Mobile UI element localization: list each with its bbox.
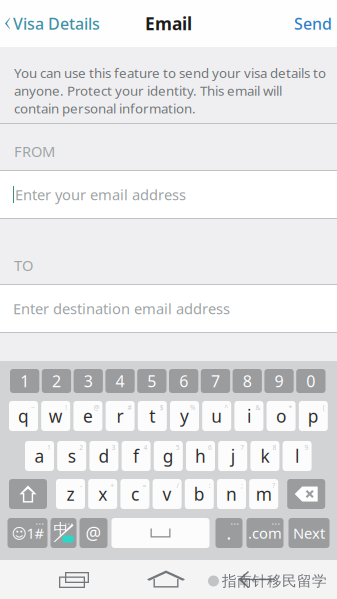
button[interactable]: 0 [296,369,325,393]
staticText: ? [272,481,275,490]
button[interactable]: v [153,479,182,509]
staticText: 4 [115,370,124,392]
staticText: k [260,444,269,467]
button[interactable]: t [138,401,167,431]
button[interactable]: c [120,479,149,509]
button[interactable]: 1 [10,369,39,393]
button[interactable]: .com [246,518,283,548]
button[interactable]: Space [111,518,209,548]
button[interactable]: Switch language [50,518,76,548]
staticText: c [131,482,139,505]
staticText: l [295,444,299,467]
button[interactable]: x [88,479,117,509]
button[interactable]: Back [234,566,280,592]
staticText: @ [85,521,101,544]
button[interactable]: k [250,441,279,471]
button[interactable]: e [73,401,102,431]
button[interactable]: z [56,479,85,509]
staticText: p [308,404,319,427]
button[interactable]: r [106,401,135,431]
button[interactable]: 9 [264,369,294,393]
staticText: $ [160,403,164,412]
staticText: 5 [176,443,180,452]
staticText: 9 [305,443,309,452]
staticText: 6 [208,443,212,452]
button[interactable]: j [218,441,247,471]
staticText: h [195,444,206,467]
staticText: ~ [31,403,35,412]
button[interactable]: Recents [52,566,100,592]
staticText: Visa Details [13,13,100,34]
button[interactable]: n [217,479,246,509]
staticText: ••• [35,520,44,529]
button[interactable]: Next [288,518,329,548]
staticText: Send [294,13,332,34]
staticText: # [128,403,132,412]
button[interactable]: h [186,441,215,471]
button[interactable]: 3 [74,369,103,393]
staticText: u [211,404,222,427]
button[interactable]: 5 [137,369,166,393]
staticText: ; [241,481,243,490]
button[interactable]: Visa Details [0,0,106,47]
staticText: 2 [79,443,83,452]
button[interactable]: q [9,401,38,431]
staticText: i [247,404,251,427]
staticText: + [110,481,114,490]
button[interactable]: y [170,401,199,431]
staticText: r [117,404,124,427]
staticText: .com [248,523,282,543]
button[interactable]: i [234,401,263,431]
button[interactable]: @ [79,518,107,548]
button[interactable]: 4 [105,369,135,393]
staticText: ••• [64,520,73,529]
staticText: m [256,482,272,505]
button[interactable]: Home [142,566,190,592]
staticText: g [163,444,174,467]
staticText: * [289,403,293,412]
button[interactable]: b [185,479,214,509]
button[interactable]: 7 [201,369,230,393]
button[interactable]: a [25,441,54,471]
button[interactable]: g [154,441,183,471]
staticText: 5 [147,370,156,392]
staticText: x [98,482,107,505]
button[interactable]: Send [284,0,337,47]
staticText: 中 [53,520,68,538]
button[interactable]: p [299,401,328,431]
button[interactable]: 8 [233,369,262,393]
staticText: d [98,444,109,467]
staticText: : [209,481,211,490]
staticText: 0 [306,370,315,392]
button[interactable]: 2 [42,369,71,393]
staticText: . [226,521,231,544]
staticText: FROM [14,141,55,161]
button[interactable]: ☺1# [7,518,47,548]
button[interactable]: 6 [169,369,198,393]
button[interactable]: m [249,479,278,509]
staticText: / [177,481,179,490]
staticText: 9 [275,370,284,392]
staticText: ☺1# [11,523,43,543]
button[interactable]: d [89,441,118,471]
staticText: 6 [179,370,188,392]
button[interactable]: s [57,441,86,471]
button[interactable]: Delete [287,479,325,509]
button[interactable]: o [267,401,296,431]
staticText: w [49,404,63,427]
staticText: 8 [243,370,252,392]
staticText: s [68,444,76,467]
staticText: f [133,444,139,467]
staticText: You can use this feature to send your vi… [14,64,326,117]
staticText: % [190,403,196,412]
button[interactable]: l [283,441,312,471]
button[interactable]: . [215,518,242,548]
button[interactable]: f [122,441,151,471]
staticText: TO [14,255,33,275]
staticText: n [226,482,237,505]
button[interactable]: Shift [9,479,47,509]
staticText: a [34,444,44,467]
button[interactable]: w [41,401,70,431]
button[interactable]: u [202,401,231,431]
staticText: Enter your email address [15,185,186,204]
